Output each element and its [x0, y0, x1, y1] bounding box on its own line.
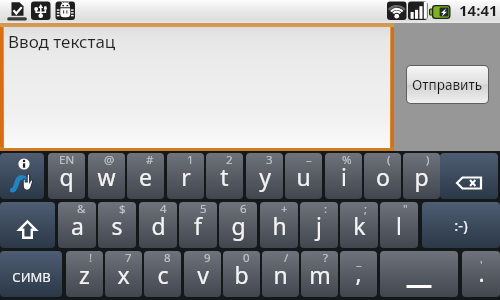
button[interactable]: w: [88, 153, 125, 199]
staticText: ": [403, 202, 408, 217]
button[interactable]: Backspace: [440, 153, 498, 199]
staticText: $: [119, 202, 126, 217]
button[interactable]: u: [285, 153, 322, 199]
staticText: y: [259, 161, 271, 192]
staticText: 14:41: [459, 0, 498, 20]
staticText: t: [220, 161, 229, 192]
button[interactable]: p: [403, 153, 440, 199]
staticText: l: [396, 210, 402, 241]
other: Space: [380, 251, 458, 297]
staticText: w: [97, 161, 116, 192]
staticText: h: [272, 210, 287, 241]
button[interactable]: Отправить: [407, 66, 488, 103]
button[interactable]: j: [300, 202, 338, 248]
staticText: ;: [364, 202, 368, 217]
button[interactable]: a: [58, 202, 96, 248]
button[interactable]: f: [179, 202, 217, 248]
button[interactable]: i: [325, 153, 362, 199]
staticText: (: [387, 153, 391, 168]
staticText: b: [234, 259, 249, 290]
staticText: i: [341, 161, 347, 192]
staticText: k: [353, 210, 366, 241]
staticText: @: [104, 153, 115, 168]
staticText: 4: [160, 202, 167, 217]
staticText: 0: [243, 251, 250, 266]
staticText: 5: [200, 202, 207, 217]
staticText: o: [376, 161, 390, 192]
staticText: d: [151, 210, 166, 241]
staticText: v: [197, 259, 209, 290]
button[interactable]: b: [223, 251, 260, 297]
button[interactable]: h: [260, 202, 298, 248]
staticText: Отправить: [412, 76, 483, 94]
staticText: q: [59, 161, 74, 192]
staticText: –: [306, 153, 312, 168]
staticText: ?: [323, 251, 328, 266]
button[interactable]: s: [98, 202, 136, 248]
staticText: .: [478, 257, 485, 288]
staticText: EN: [59, 153, 75, 168]
button[interactable]: t: [206, 153, 243, 199]
staticText: u: [296, 161, 311, 192]
other: Change language: [0, 153, 44, 199]
staticText: &: [77, 202, 86, 217]
button[interactable]: x: [105, 251, 142, 297]
staticText: ,: [355, 257, 362, 288]
button[interactable]: g: [219, 202, 257, 248]
staticText: :: [324, 202, 328, 217]
button[interactable]: d: [139, 202, 177, 248]
staticText: Ввод текстац: [8, 30, 116, 53]
button[interactable]: l: [380, 202, 418, 248]
staticText: s: [111, 210, 123, 241]
staticText: n: [273, 259, 288, 290]
staticText: %: [342, 153, 352, 168]
button[interactable]: c: [144, 251, 181, 297]
staticText: /: [284, 251, 289, 266]
button[interactable]: y: [246, 153, 283, 199]
button[interactable]: e: [127, 153, 164, 199]
staticText: a: [71, 210, 84, 241]
button[interactable]: ,: [340, 251, 377, 297]
button[interactable]: Ввод текстац: [4, 27, 390, 148]
staticText: !: [89, 251, 93, 266]
button[interactable]: :-): [422, 202, 500, 248]
button[interactable]: m: [301, 251, 338, 297]
staticText: z: [79, 259, 90, 290]
staticText: 7: [125, 251, 132, 266]
staticText: x: [117, 259, 130, 290]
button[interactable]: r: [167, 153, 204, 199]
button[interactable]: v: [184, 251, 221, 297]
button[interactable]: n: [262, 251, 299, 297]
staticText: 6: [240, 202, 247, 217]
staticText: –: [356, 257, 362, 273]
staticText: m: [309, 259, 331, 290]
staticText: ': [480, 257, 483, 273]
other: Shift: [0, 202, 55, 248]
staticText: 9: [204, 251, 211, 266]
staticText: ): [426, 153, 430, 168]
staticText: f: [194, 210, 202, 241]
button[interactable]: Space: [380, 251, 458, 297]
button[interactable]: o: [364, 153, 401, 199]
staticText: 3: [266, 153, 273, 168]
button[interactable]: q: [48, 153, 85, 199]
staticText: c: [157, 259, 169, 290]
button[interactable]: z: [66, 251, 103, 297]
staticText: :-): [454, 215, 468, 235]
staticText: 1: [187, 153, 194, 168]
staticText: e: [139, 161, 152, 192]
staticText: j: [316, 210, 322, 241]
button[interactable]: k: [340, 202, 378, 248]
button[interactable]: СИМВ: [0, 251, 62, 297]
other: Backspace: [440, 153, 498, 199]
staticText: СИМВ: [12, 268, 51, 286]
staticText: +: [281, 202, 288, 217]
staticText: #: [146, 153, 154, 168]
staticText: g: [231, 210, 246, 241]
button[interactable]: .: [462, 251, 500, 297]
staticText: r: [181, 161, 191, 192]
button[interactable]: Shift: [0, 202, 55, 248]
staticText: 2: [226, 153, 233, 168]
button[interactable]: Change language: [0, 153, 44, 199]
staticText: 8: [164, 251, 171, 266]
